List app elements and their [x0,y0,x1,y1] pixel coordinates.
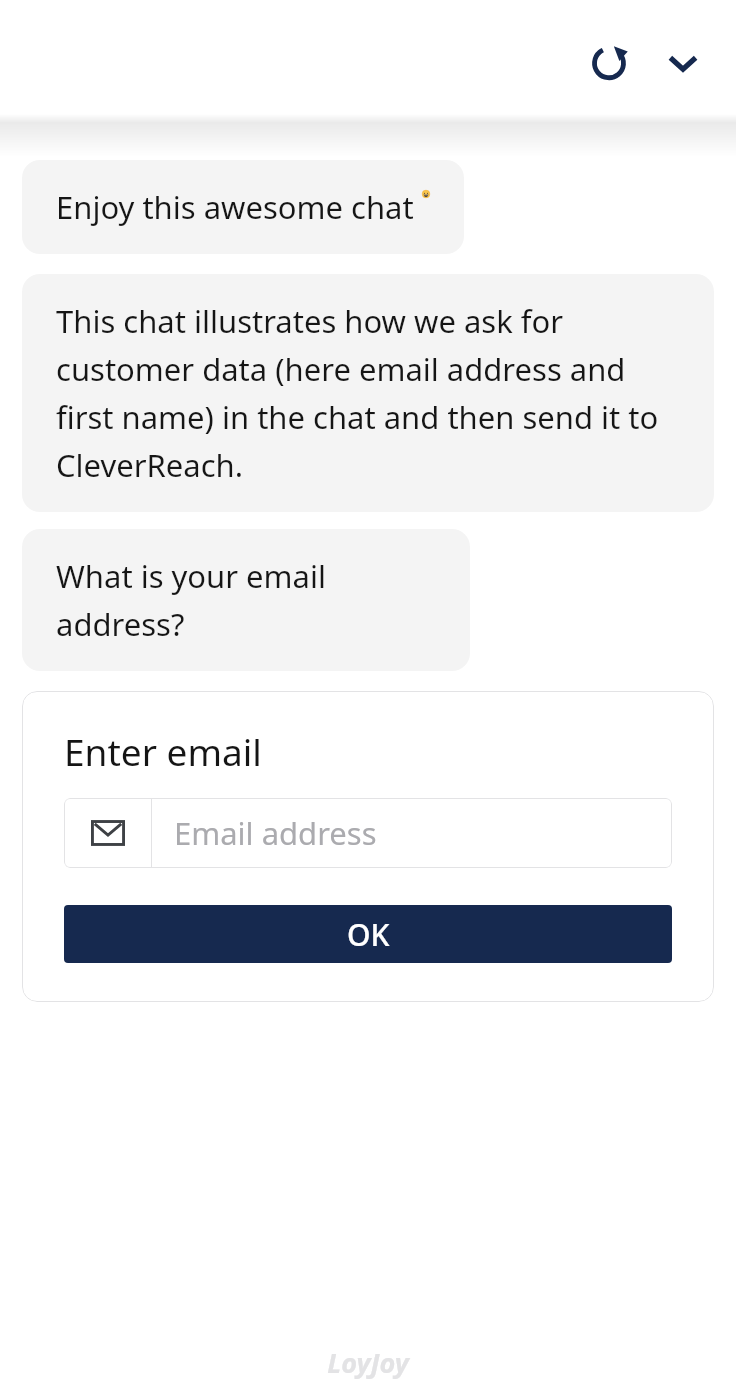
button[interactable]: Collapse chat [646,25,720,99]
button[interactable]: What is your email address? [22,529,470,671]
staticText: LoyJoy [327,1344,409,1381]
button[interactable]: This chat illustrates how we ask for cus… [22,274,714,512]
staticText: Enjoy this awesome chat [56,186,422,228]
staticText: This chat illustrates how we ask for cus… [56,300,680,486]
button[interactable]: Email address [64,798,672,868]
button[interactable]: Enjoy this awesome chat [22,160,464,254]
staticText: OK [347,914,390,955]
staticText: What is your email address? [56,555,436,645]
staticText: Enter email [64,726,262,776]
button[interactable]: Refresh [572,25,646,99]
button[interactable]: OK [64,905,672,963]
staticText: Email address [174,812,377,854]
